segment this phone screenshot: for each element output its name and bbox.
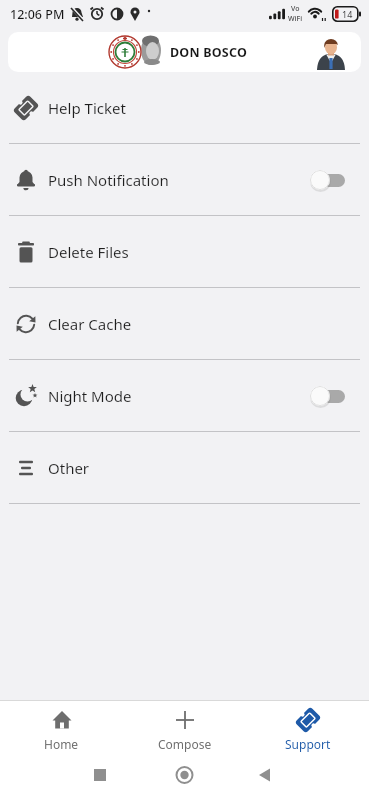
staticText: Clear Cache [48, 314, 132, 334]
button[interactable]: Help Ticket [0, 72, 369, 143]
button[interactable]: Compose [123, 701, 246, 759]
staticText: Night Mode [48, 386, 132, 406]
staticText: 12:06 PM [10, 6, 65, 23]
button[interactable]: Clear Cache [0, 288, 369, 359]
staticText: Help Ticket [48, 98, 126, 118]
button[interactable] [0, 759, 369, 800]
button[interactable]: Home [0, 701, 123, 759]
button[interactable] [310, 385, 345, 407]
button[interactable]: Push Notification [0, 144, 369, 215]
staticText: Vo [291, 4, 300, 14]
staticText: DON BOSCO [170, 44, 248, 61]
staticText: Support [285, 736, 331, 752]
staticText: Compose [158, 736, 212, 752]
staticText: Other [48, 458, 90, 478]
button[interactable]: Delete Files [0, 216, 369, 287]
button[interactable] [310, 169, 345, 191]
staticText: Push Notification [48, 170, 169, 190]
button[interactable]: Night Mode [0, 360, 369, 431]
staticText: Home [44, 736, 79, 752]
staticText: WiFi [288, 14, 303, 24]
button[interactable]: Support [246, 701, 369, 759]
staticText: Delete Files [48, 242, 129, 262]
button[interactable]: DON BOSCO [8, 32, 361, 72]
button[interactable]: Other [0, 432, 369, 503]
staticText: 14 [342, 8, 353, 20]
